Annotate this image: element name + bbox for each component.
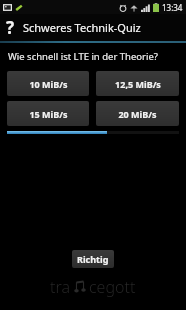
button[interactable]: 12,5 MiB/s (96, 71, 179, 96)
staticText: tra (50, 276, 71, 298)
button[interactable]: 10 MiB/s (7, 71, 89, 96)
staticText: Wie schnell ist LTE in der Theorie? (8, 50, 158, 63)
staticText: 13:34 (162, 2, 183, 13)
staticText: Schweres Technik-Quiz (23, 20, 141, 35)
button[interactable]: Richtig (72, 250, 114, 268)
staticText: 20 MiB/s (118, 108, 157, 120)
button[interactable]: 15 MiB/s (7, 101, 89, 126)
staticText: 12,5 MiB/s (115, 78, 161, 90)
staticText: 15 MiB/s (29, 108, 68, 120)
staticText: Richtig (77, 253, 109, 265)
button[interactable]: 20 MiB/s (96, 101, 179, 126)
staticText: ? (6, 16, 15, 39)
staticText: cegott (89, 276, 136, 298)
staticText: 10 MiB/s (29, 78, 68, 90)
